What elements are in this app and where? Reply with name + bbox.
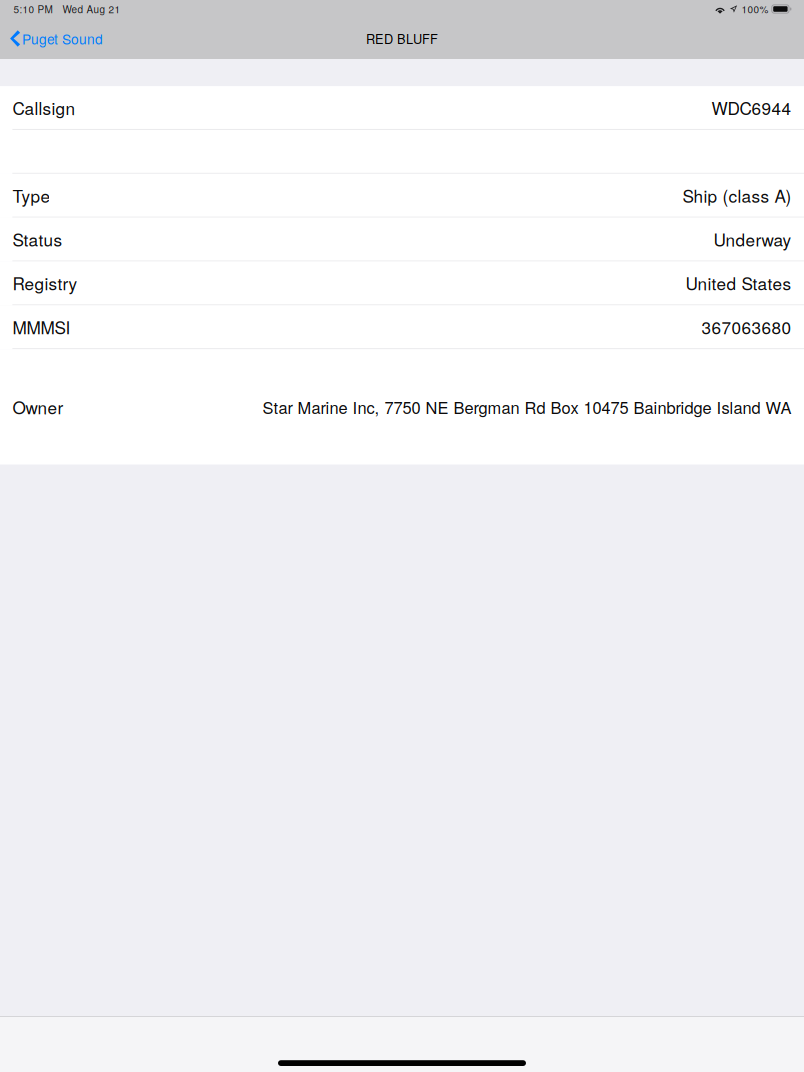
- staticText: Ship (class A): [683, 183, 792, 207]
- staticText: Star Marine Inc, 7750 NE Bergman Rd Box …: [263, 395, 792, 419]
- staticText: Underway: [714, 227, 792, 251]
- button[interactable]: Puget Sound: [0, 18, 113, 59]
- staticText: Callsign: [12, 95, 75, 120]
- staticText: MMMSI: [12, 314, 70, 339]
- staticText: 5:10 PM: [14, 2, 53, 16]
- staticText: RED BLUFF: [366, 29, 438, 48]
- staticText: Registry: [12, 271, 77, 295]
- staticText: Puget Sound: [22, 29, 103, 48]
- button[interactable]: MMMSI: [0, 305, 804, 349]
- staticText: Status: [12, 227, 62, 251]
- button[interactable]: Status: [0, 218, 804, 262]
- staticText: Owner: [12, 394, 63, 419]
- staticText: United States: [686, 271, 792, 295]
- button[interactable]: Type: [0, 174, 804, 218]
- button[interactable]: Owner: [0, 349, 804, 464]
- staticText: Type: [12, 183, 50, 207]
- button[interactable]: Callsign: [0, 86, 804, 130]
- staticText: 367063680: [702, 314, 792, 339]
- staticText: WDC6944: [712, 95, 792, 120]
- staticText: 100%: [741, 2, 768, 16]
- staticText: Wed Aug 21: [63, 2, 121, 16]
- button[interactable]: Registry: [0, 261, 804, 305]
